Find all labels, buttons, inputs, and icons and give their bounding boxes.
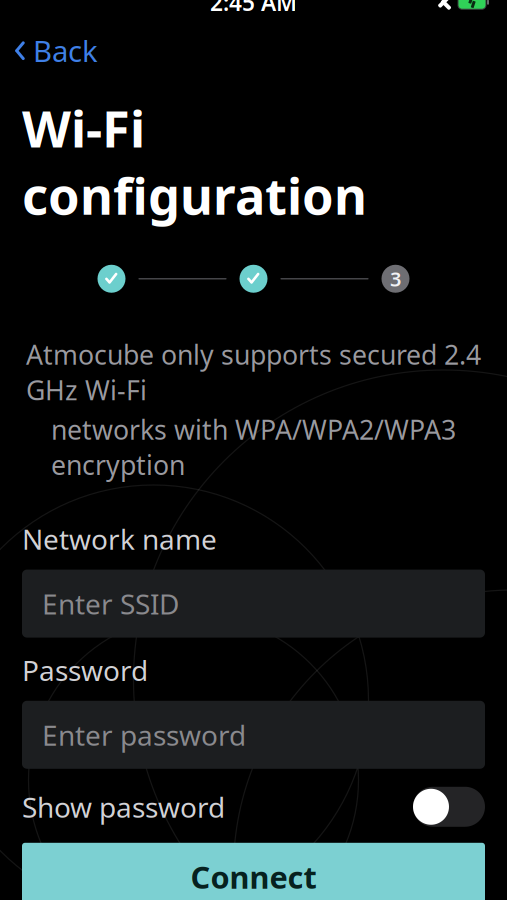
- staticText: Wi-Fi configuration: [22, 94, 367, 229]
- staticText: Connect: [190, 856, 316, 897]
- staticText: Network name: [22, 520, 217, 558]
- staticText: Enter SSID: [42, 585, 179, 622]
- button[interactable]: Connect: [22, 843, 485, 900]
- staticText: Show password: [22, 788, 225, 825]
- staticText: 3: [390, 265, 401, 292]
- staticText: Enter password: [42, 716, 246, 753]
- staticText: 2:45 AM: [210, 0, 297, 17]
- button[interactable]: Back: [0, 25, 112, 76]
- staticText: Atmocube only supports secured 2.4 GHz W…: [26, 337, 481, 408]
- staticText: networks with WPA/WPA2/WPA3 encryption: [51, 412, 456, 482]
- staticText: Back: [33, 31, 98, 70]
- staticText: Password: [22, 652, 148, 689]
- button[interactable]: Show password: [22, 787, 485, 827]
